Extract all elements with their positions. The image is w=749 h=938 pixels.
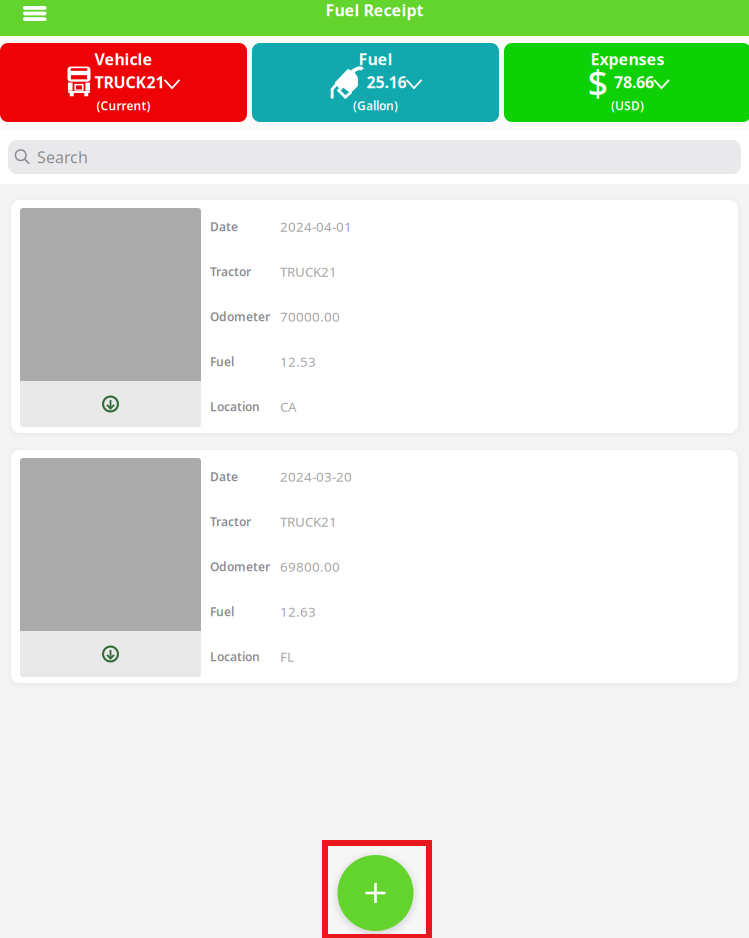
staticText: 2024-04-01 xyxy=(280,218,352,235)
staticText: 12.53 xyxy=(280,353,316,370)
staticText: 2024-03-20 xyxy=(280,468,352,485)
staticText: FL xyxy=(280,648,294,665)
staticText: (Current) xyxy=(96,97,150,113)
staticText: Search xyxy=(37,146,88,168)
staticText: Tractor xyxy=(210,513,251,529)
staticText: Date xyxy=(210,218,238,234)
staticText: CA xyxy=(280,398,297,415)
staticText: 12.63 xyxy=(280,603,316,620)
staticText: Fuel xyxy=(210,603,234,619)
staticText: Location xyxy=(210,648,260,664)
staticText: (Gallon) xyxy=(353,97,398,113)
staticText: TRUCK21 xyxy=(280,513,337,530)
staticText: TRUCK21 xyxy=(280,263,337,280)
staticText: 78.66 xyxy=(614,71,654,93)
button[interactable]: Fuel xyxy=(252,43,499,122)
staticText: Date xyxy=(210,468,238,484)
staticText: Expenses xyxy=(590,48,664,70)
staticText: 69800.00 xyxy=(280,558,340,575)
button[interactable]: Menu xyxy=(0,0,56,36)
staticText: Vehicle xyxy=(94,48,152,70)
staticText: 25.16 xyxy=(366,71,406,93)
button[interactable]: Expenses xyxy=(504,43,749,122)
button[interactable]: Vehicle xyxy=(0,43,247,122)
staticText: Fuel xyxy=(358,48,392,70)
staticText: Fuel Receipt xyxy=(325,0,423,21)
staticText: 70000.00 xyxy=(280,308,340,325)
button[interactable]: Add fuel receipt xyxy=(337,855,413,931)
staticText: Location xyxy=(210,398,260,414)
staticText: Fuel xyxy=(210,353,234,369)
staticText: $ xyxy=(587,58,608,106)
staticText: (USD) xyxy=(611,97,644,113)
button[interactable]: Date xyxy=(11,450,738,683)
staticText: Odometer xyxy=(210,558,270,574)
staticText: Tractor xyxy=(210,263,251,279)
staticText: Odometer xyxy=(210,308,270,324)
button[interactable]: Date xyxy=(11,200,738,433)
staticText: TRUCK21 xyxy=(94,71,164,93)
